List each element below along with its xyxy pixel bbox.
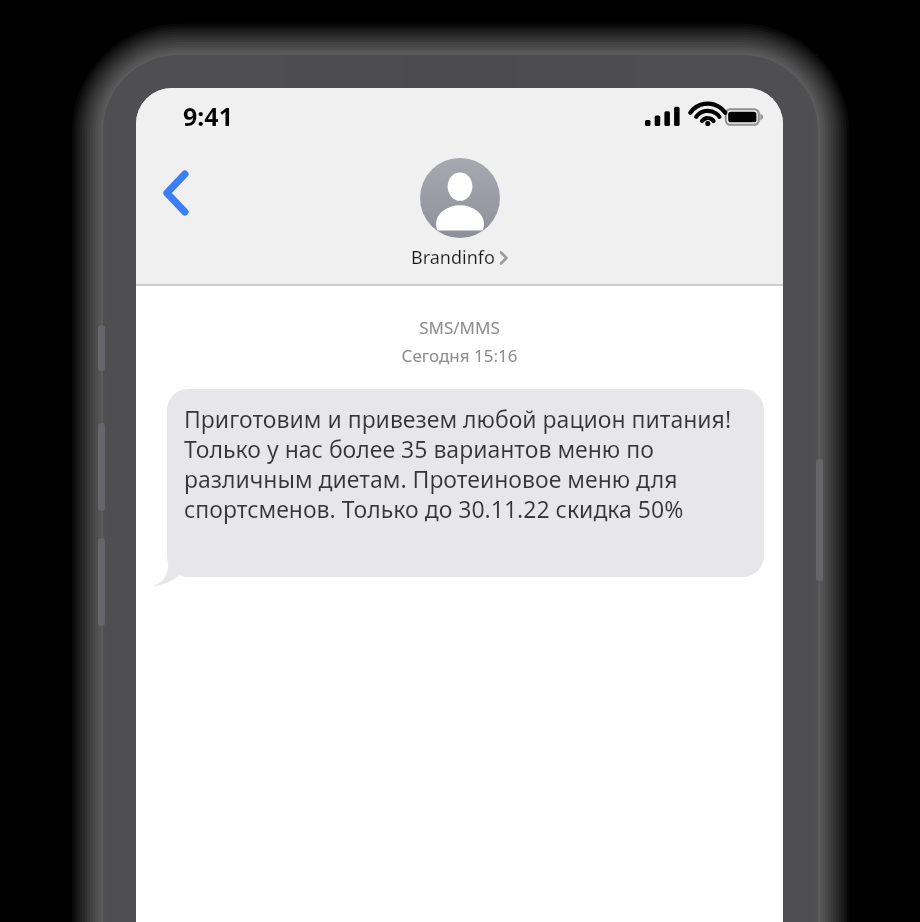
staticText: Приготовим и привезем любой рацион питан… (184, 403, 748, 524)
staticText: SMS/MMS (136, 316, 783, 339)
staticText: 9:41 (183, 99, 233, 133)
button[interactable]: Brandinfo (411, 158, 508, 270)
staticText: Brandinfo (411, 245, 495, 270)
staticText: Сегодня 15:16 (136, 344, 783, 367)
button[interactable]: Back (144, 158, 214, 228)
button[interactable]: Приготовим и привезем любой рацион питан… (167, 389, 764, 577)
